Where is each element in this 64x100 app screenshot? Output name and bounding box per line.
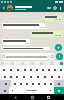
button[interactable]: Key <box>42 80 48 87</box>
button[interactable]: Key <box>34 66 40 73</box>
button[interactable]: Symbols <box>0 87 9 94</box>
button[interactable] <box>2 47 50 50</box>
button[interactable]: Key <box>21 66 28 73</box>
button[interactable]: Key <box>41 73 48 80</box>
button[interactable] <box>31 31 62 37</box>
button[interactable]: Key <box>55 73 62 80</box>
button[interactable]: Space <box>16 87 47 94</box>
button[interactable]: Key <box>7 66 14 73</box>
button[interactable]: Key <box>0 66 7 73</box>
button[interactable]: Key <box>24 80 30 87</box>
button[interactable]: Shift <box>0 80 11 87</box>
button[interactable]: Profile photo <box>7 5 13 11</box>
button[interactable] <box>2 39 30 45</box>
button[interactable]: Key <box>20 73 27 80</box>
button[interactable]: Key <box>14 66 21 73</box>
button[interactable]: Send voice message <box>56 53 63 60</box>
button[interactable]: Scroll to bottom <box>55 44 62 51</box>
button[interactable] <box>2 23 45 29</box>
button[interactable]: Key <box>11 80 18 87</box>
button[interactable]: Key <box>2 73 8 80</box>
button[interactable]: Period <box>47 87 54 94</box>
button[interactable]: Key <box>52 66 58 73</box>
button[interactable]: Key <box>48 80 54 87</box>
button[interactable]: Key <box>58 66 64 73</box>
button[interactable]: Key <box>36 80 42 87</box>
button[interactable] <box>15 6 47 10</box>
button[interactable]: Key <box>27 73 34 80</box>
button[interactable]: Backspace <box>54 80 64 87</box>
button[interactable]: Key <box>30 80 36 87</box>
button[interactable]: Recents <box>47 96 50 99</box>
button[interactable]: Key <box>8 73 14 80</box>
button[interactable]: Enter <box>54 87 64 94</box>
other: Attach <box>47 55 50 58</box>
button[interactable]: Key <box>40 66 46 73</box>
button[interactable]: Emoji <box>1 53 55 60</box>
other: Camera <box>51 55 54 58</box>
button[interactable]: More options <box>59 7 62 10</box>
button[interactable]: Video call <box>47 6 51 10</box>
other: Emoji <box>2 55 5 58</box>
button[interactable]: Key <box>14 73 20 80</box>
button[interactable]: Key <box>48 73 55 80</box>
button[interactable]: Comma <box>9 87 16 94</box>
button[interactable]: Key <box>28 66 34 73</box>
button[interactable] <box>44 15 62 21</box>
button[interactable]: Key <box>18 80 24 87</box>
button[interactable]: Home <box>31 96 34 99</box>
button[interactable]: Back <box>14 96 17 99</box>
button[interactable]: Voice call <box>53 6 57 10</box>
button[interactable]: Key <box>34 73 41 80</box>
button[interactable]: Toolbar action <box>60 62 63 65</box>
button[interactable]: Back <box>2 6 6 10</box>
button[interactable]: Key <box>46 66 52 73</box>
